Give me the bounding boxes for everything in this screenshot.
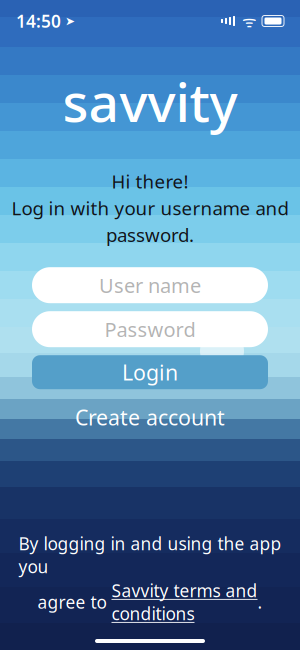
staticText: Hi there! — [111, 169, 188, 194]
staticText: ➤ — [61, 14, 75, 28]
staticText: Log in with your username and — [11, 196, 288, 220]
button[interactable]: By logging in and using the app you — [10, 526, 290, 631]
staticText: savvity — [62, 66, 237, 137]
staticText: Create account — [75, 403, 225, 431]
button[interactable]: Create account — [32, 401, 268, 433]
staticText: password. — [106, 222, 194, 247]
button[interactable]: Login — [32, 355, 268, 389]
staticText: User name — [99, 272, 201, 298]
staticText: ᯤ — [238, 10, 257, 32]
staticText: Savvity terms and conditions — [111, 579, 257, 625]
staticText: Password — [104, 316, 195, 342]
button[interactable]: User name — [32, 267, 268, 303]
staticText: By logging in and using the app you — [18, 532, 281, 578]
staticText: . — [257, 590, 262, 613]
staticText: Login — [122, 358, 178, 386]
staticText: agree to — [37, 590, 111, 613]
staticText: 14:50 — [16, 9, 61, 32]
button[interactable]: Password — [32, 311, 268, 347]
